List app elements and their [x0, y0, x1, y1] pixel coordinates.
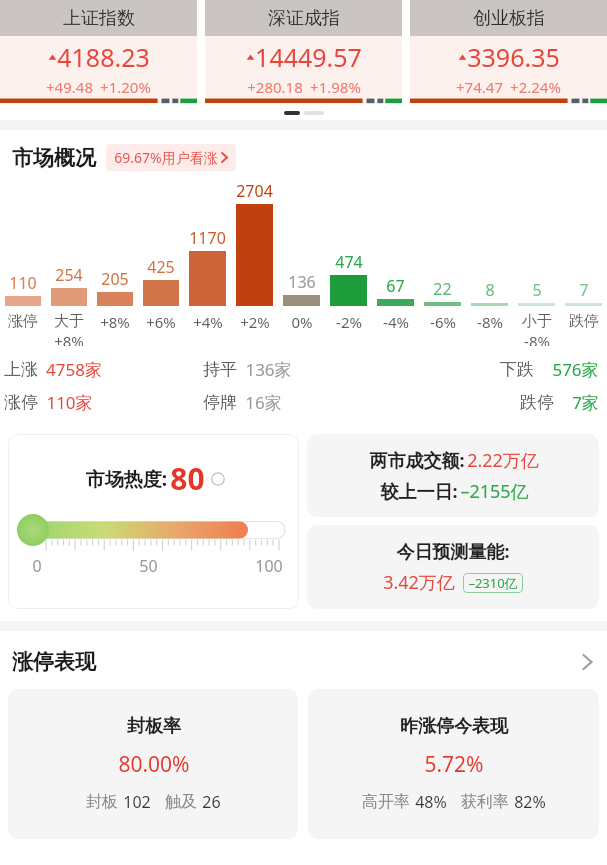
staticText: 0% — [291, 312, 313, 332]
staticText: +49.48 — [46, 77, 93, 97]
staticText: 80 — [170, 458, 205, 499]
staticText: 获利率 — [461, 792, 509, 812]
staticText: 跌停 — [569, 312, 599, 331]
staticText: 涨停表现 — [12, 649, 96, 675]
staticText: 82% — [514, 791, 546, 813]
staticText: +280.18 — [247, 77, 303, 97]
staticText: 576家 — [552, 358, 599, 381]
staticText: 50 — [139, 555, 158, 577]
staticText: -6% — [430, 312, 456, 332]
button[interactable]: 两市成交额: — [307, 434, 599, 517]
staticText: +74.47 — [456, 77, 503, 97]
staticText: 封板率 — [127, 715, 181, 738]
staticText: 两市成交额: — [367, 448, 467, 473]
staticText: 下跌 — [500, 359, 534, 380]
staticText: 5.72% — [424, 750, 484, 779]
staticText: –2155亿 — [460, 479, 529, 504]
staticText: 254 — [55, 264, 83, 286]
button[interactable]: 涨停表现 — [0, 631, 607, 689]
staticText: 425 — [147, 256, 175, 278]
staticText: 110 — [9, 272, 37, 294]
staticText: 26 — [202, 791, 221, 813]
staticText: 100 — [255, 555, 283, 577]
staticText: 16家 — [245, 391, 282, 414]
staticText: 102 — [123, 791, 151, 813]
staticText: 48% — [415, 791, 447, 813]
button[interactable]: 今日预测量能: — [307, 525, 599, 609]
staticText: +1.98% — [310, 77, 361, 97]
staticText: 7家 — [572, 391, 599, 414]
staticText: 跌停 — [520, 392, 554, 413]
staticText: 7 — [579, 279, 589, 301]
staticText: 474 — [335, 251, 363, 273]
staticText: +8% — [100, 312, 130, 332]
staticText: 8 — [485, 279, 495, 301]
staticText: –2310亿 — [468, 574, 518, 592]
other: 更多 — [582, 653, 593, 671]
staticText: 大于 — [54, 312, 84, 331]
staticText: 停牌 — [203, 392, 237, 413]
staticText: +2% — [240, 312, 270, 332]
button[interactable]: 市场热度: — [8, 434, 299, 609]
staticText: 2.22万亿 — [467, 448, 539, 473]
staticText: 创业板指 — [473, 7, 545, 30]
staticText: +6% — [146, 312, 176, 332]
staticText: -2% — [336, 312, 362, 332]
staticText: 4758家 — [46, 358, 102, 381]
staticText: 136家 — [245, 358, 292, 381]
staticText: 69.67%用户看涨 — [114, 148, 218, 167]
staticText: 上证指数 — [63, 7, 135, 30]
staticText: 67 — [386, 275, 405, 297]
staticText: 80.00% — [118, 750, 190, 779]
staticText: 持平 — [203, 359, 237, 380]
staticText: 110家 — [46, 391, 93, 414]
staticText: 深证成指 — [268, 7, 340, 30]
button[interactable]: 69.67%用户看涨 — [106, 144, 236, 171]
button[interactable]: 封板率 — [8, 689, 298, 839]
staticText: 1170 — [189, 227, 226, 249]
button[interactable]: 深证成指 — [205, 0, 402, 104]
staticText: +8% — [54, 331, 84, 346]
staticText: -8% — [477, 312, 503, 332]
staticText: 高开率 — [362, 792, 410, 812]
staticText: 小于 — [522, 312, 552, 331]
staticText: +4% — [193, 312, 223, 332]
staticText: 22 — [433, 278, 452, 300]
staticText: 市场热度: — [83, 466, 170, 492]
staticText: 封板 — [86, 792, 118, 812]
button[interactable]: 创业板指 — [410, 0, 607, 104]
staticText: 3396.35 — [467, 40, 560, 74]
staticText: 今日预测量能: — [396, 539, 510, 564]
staticText: +1.20% — [100, 77, 151, 97]
staticText: -4% — [383, 312, 409, 332]
staticText: 14449.57 — [255, 40, 362, 74]
staticText: 4188.23 — [57, 40, 150, 74]
staticText: 触及 — [165, 792, 197, 812]
staticText: 昨涨停今表现 — [400, 715, 508, 738]
staticText: 2704 — [236, 180, 273, 202]
staticText: 5 — [532, 279, 542, 301]
staticText: 涨停 — [8, 312, 38, 331]
staticText: 涨停 — [4, 392, 38, 413]
staticText: 上涨 — [4, 359, 38, 380]
staticText: +2.24% — [510, 77, 561, 97]
staticText: 0 — [32, 555, 42, 577]
button[interactable]: 昨涨停今表现 — [308, 689, 599, 839]
button[interactable]: 上证指数 — [0, 0, 197, 104]
staticText: 3.42万亿 — [383, 570, 455, 595]
staticText: 136 — [288, 271, 316, 293]
staticText: 市场概况 — [12, 145, 96, 171]
other: 说明 — [211, 472, 225, 486]
staticText: -8% — [524, 331, 550, 346]
staticText: 较上一日: — [378, 479, 460, 504]
staticText: 205 — [101, 268, 129, 290]
